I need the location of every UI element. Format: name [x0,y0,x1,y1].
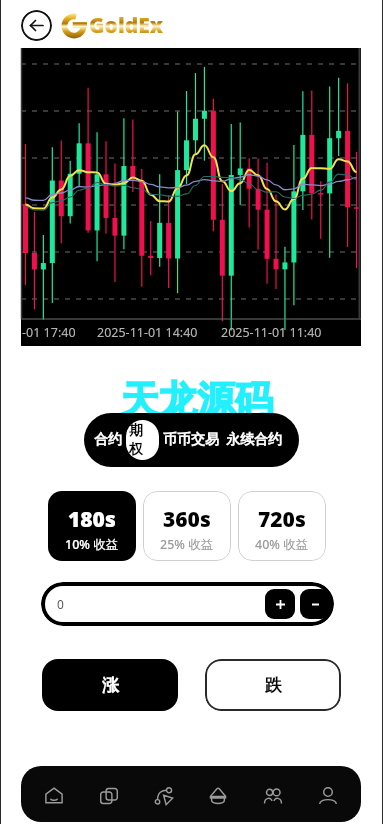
button[interactable]: Home [32,772,76,816]
button[interactable]: 合约 [91,431,125,449]
staticText: 360s [163,505,211,534]
staticText: 币币交易 [163,431,219,449]
button[interactable]: 180s [48,491,136,561]
button[interactable]: 期权 [126,420,159,460]
button[interactable]: Back [21,10,52,41]
button[interactable]: 360s [143,491,231,561]
button[interactable]: Profile [306,772,350,816]
staticText: 40% 收益 [255,536,309,553]
staticText: -01 17:40 [22,324,76,341]
staticText: 期权 [129,422,156,458]
button[interactable]: 永续合约 [223,431,285,449]
staticText: 180s [68,505,116,534]
staticText: 720s [258,505,306,534]
button[interactable]: Trade [142,772,186,816]
staticText: 永续合约 [226,431,282,449]
button[interactable]: Wallet [196,772,240,816]
staticText: 2025-11-01 14:40 [97,324,198,341]
button[interactable]: 涨 [42,659,178,711]
staticText: 10% 收益 [65,536,119,553]
staticText: 合约 [94,431,122,449]
staticText: 25% 收益 [160,536,214,553]
button[interactable]: Increase [265,589,295,619]
button[interactable]: 币币交易 [160,431,222,449]
button[interactable]: Decrease [300,589,330,619]
button[interactable]: 跌 [205,659,341,711]
button[interactable]: 720s [238,491,326,561]
staticText: 跌 [265,675,282,696]
button[interactable]: Orders [87,772,131,816]
button[interactable]: Team [251,772,295,816]
staticText: 涨 [102,675,119,696]
staticText: 0 [57,596,265,612]
staticText: 2025-11-01 11:40 [221,324,322,341]
staticText: 天龙源码 [121,376,273,424]
staticText: GoldEx [89,11,163,40]
